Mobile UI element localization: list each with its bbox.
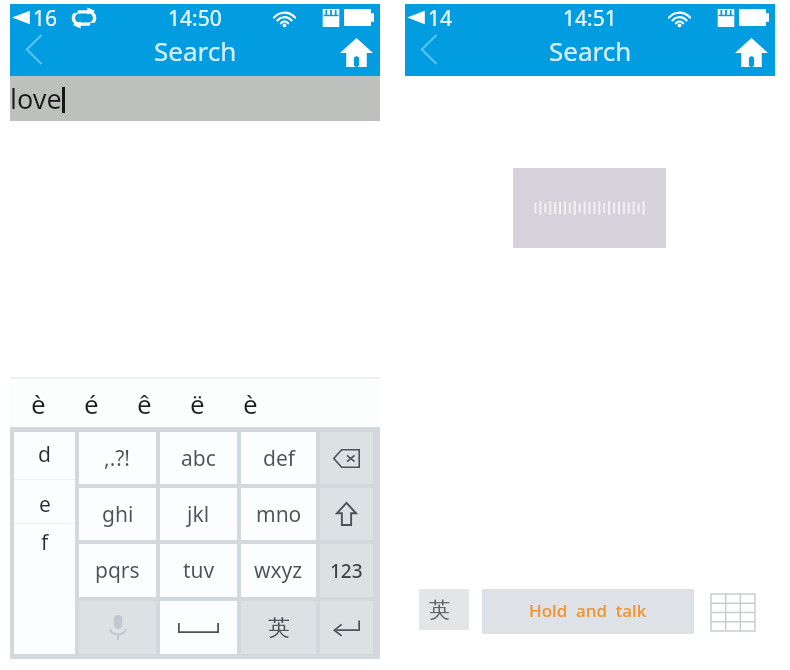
staticText: Search bbox=[549, 33, 632, 68]
button[interactable]: ghi bbox=[79, 488, 156, 540]
staticText: è bbox=[31, 386, 46, 421]
button[interactable] bbox=[160, 601, 237, 654]
staticText: d bbox=[38, 440, 51, 469]
button[interactable]: jkl bbox=[160, 488, 237, 540]
staticText: abc bbox=[181, 444, 216, 473]
staticText: 14:51 bbox=[563, 4, 617, 31]
button[interactable]: 英 bbox=[241, 601, 316, 654]
staticText: ë bbox=[190, 386, 205, 421]
button[interactable] bbox=[320, 488, 373, 540]
staticText: love bbox=[10, 80, 62, 117]
staticText: Search bbox=[154, 33, 237, 68]
staticText: 英 bbox=[268, 614, 290, 642]
button[interactable]: é bbox=[65, 379, 118, 427]
button[interactable]: 英 bbox=[419, 589, 469, 630]
staticText: è bbox=[243, 386, 258, 421]
staticText: tuv bbox=[183, 556, 215, 585]
staticText: wxyz bbox=[254, 556, 303, 585]
staticText: ê bbox=[137, 386, 152, 421]
staticText: Hold and talk bbox=[529, 599, 647, 622]
button[interactable]: ê bbox=[118, 379, 171, 427]
staticText: 123 bbox=[330, 558, 363, 584]
staticText: jkl bbox=[187, 500, 210, 529]
button[interactable]: def bbox=[241, 432, 316, 484]
staticText: 英 bbox=[429, 597, 450, 623]
staticText: ,.?! bbox=[104, 444, 131, 473]
button[interactable]: Keyboard bbox=[705, 591, 761, 633]
staticText: 14:50 bbox=[168, 4, 222, 31]
button[interactable]: mno bbox=[241, 488, 316, 540]
button[interactable]: Back bbox=[405, 31, 452, 76]
button[interactable]: wxyz bbox=[241, 544, 316, 597]
button[interactable]: pqrs bbox=[79, 544, 156, 597]
button[interactable]: love bbox=[10, 76, 380, 121]
button[interactable]: tuv bbox=[160, 544, 237, 597]
button[interactable] bbox=[320, 601, 373, 654]
button[interactable]: è bbox=[12, 379, 65, 427]
button[interactable]: Back bbox=[10, 31, 57, 76]
staticText: ghi bbox=[102, 500, 134, 529]
button[interactable]: Home bbox=[728, 31, 775, 76]
button[interactable]: Home bbox=[333, 31, 380, 76]
button[interactable] bbox=[79, 601, 156, 654]
staticText: 14 bbox=[428, 4, 453, 31]
staticText: f bbox=[41, 528, 49, 557]
button[interactable]: abc bbox=[160, 432, 237, 484]
staticText: 16 bbox=[33, 4, 58, 31]
button[interactable]: ë bbox=[171, 379, 224, 427]
staticText: e bbox=[39, 490, 51, 519]
staticText: pqrs bbox=[95, 556, 140, 585]
staticText: def bbox=[263, 444, 295, 473]
button[interactable]: ,.?! bbox=[79, 432, 156, 484]
button[interactable] bbox=[320, 432, 373, 484]
button[interactable]: è bbox=[224, 379, 277, 427]
staticText: mno bbox=[256, 500, 302, 529]
button[interactable]: 123 bbox=[320, 544, 373, 597]
button[interactable]: d bbox=[14, 432, 75, 654]
staticText: é bbox=[84, 386, 99, 421]
button[interactable]: Hold and talk bbox=[482, 589, 694, 634]
